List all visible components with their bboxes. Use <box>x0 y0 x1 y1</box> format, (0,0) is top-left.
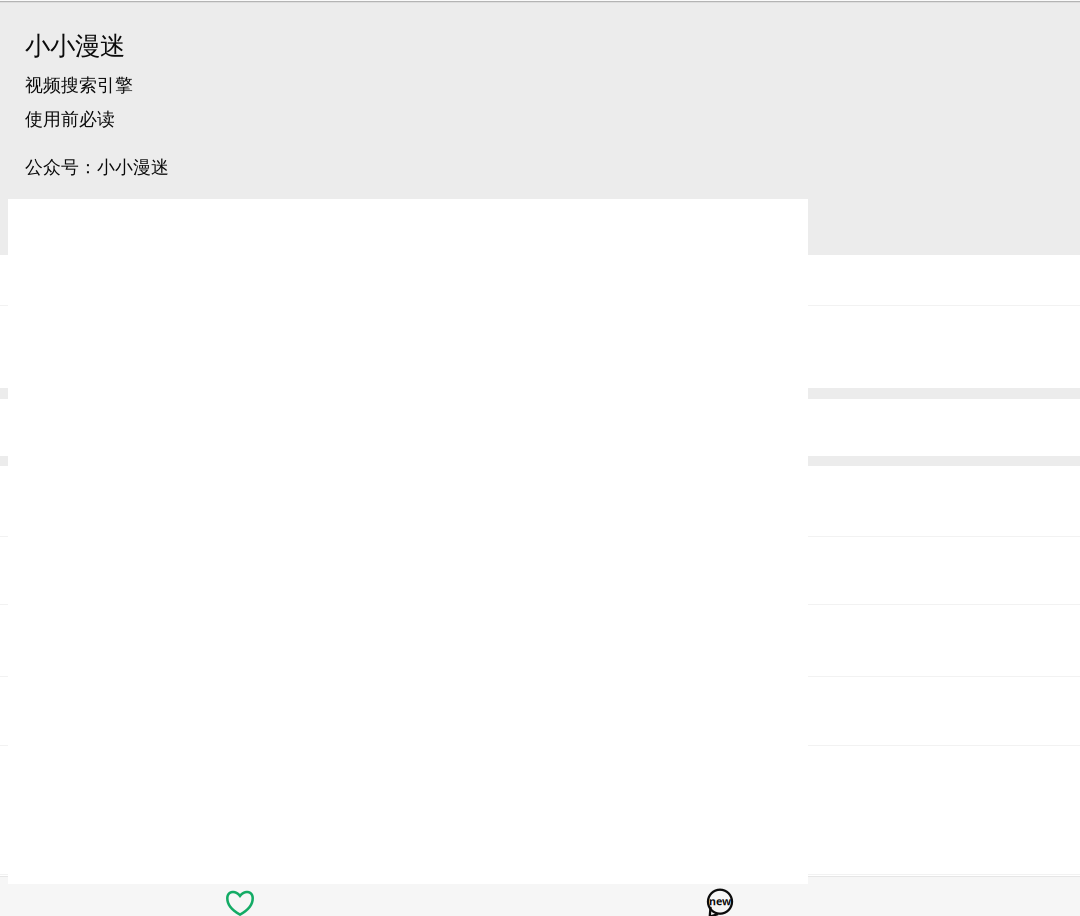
button[interactable]: 使用前必读 <box>25 108 115 130</box>
button[interactable]: 收藏 <box>0 877 480 916</box>
staticText: 使用前必读 <box>25 108 115 130</box>
button[interactable]: 最新 <box>480 877 960 916</box>
staticText: 视频搜索引擎 <box>25 74 133 96</box>
staticText: 小小漫迷 <box>25 30 125 62</box>
staticText: new <box>709 894 731 908</box>
staticText: 公众号：小小漫迷 <box>25 156 169 178</box>
